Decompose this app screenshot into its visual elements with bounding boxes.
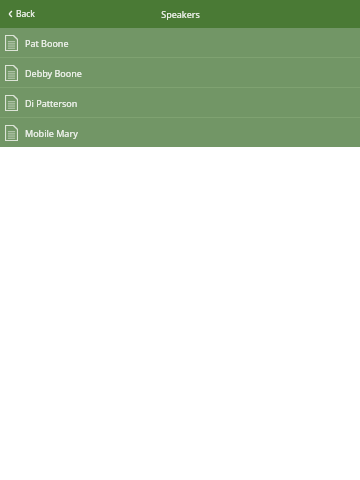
other: Back: [8, 10, 13, 18]
staticText: Di Patterson: [25, 97, 78, 109]
staticText: Back: [16, 8, 35, 20]
staticText: Debby Boone: [25, 67, 82, 79]
button[interactable]: Di Patterson: [0, 88, 360, 117]
button[interactable]: Mobile Mary: [0, 118, 360, 147]
staticText: Pat Boone: [25, 37, 69, 49]
button[interactable]: Debby Boone: [0, 58, 360, 87]
staticText: Mobile Mary: [25, 127, 78, 139]
button[interactable]: Back: [7, 5, 36, 23]
button[interactable]: Pat Boone: [0, 28, 360, 57]
staticText: Speakers: [161, 8, 200, 20]
